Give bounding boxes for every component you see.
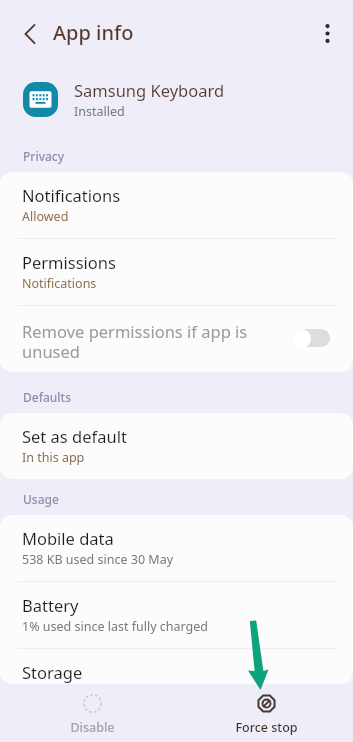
staticText: Privacy: [23, 148, 65, 164]
button[interactable]: Force stop: [218, 686, 314, 742]
button[interactable]: Back: [6, 10, 54, 58]
staticText: Usage: [23, 491, 59, 507]
staticText: Remove permissions if app is unused: [22, 320, 297, 363]
staticText: Storage: [22, 661, 83, 683]
button[interactable]: Battery: [0, 582, 353, 648]
button[interactable]: Mobile data: [0, 515, 353, 581]
staticText: Mobile data: [22, 527, 114, 549]
staticText: Set as default: [22, 425, 127, 447]
staticText: Defaults: [23, 389, 72, 405]
staticText: Installed: [74, 103, 125, 120]
staticText: Force stop: [235, 719, 298, 736]
button[interactable]: More options: [305, 11, 349, 55]
staticText: In this app: [22, 449, 85, 466]
staticText: Samsung Keyboard: [74, 79, 225, 101]
button[interactable]: Set as default: [0, 413, 353, 479]
button[interactable]: Notifications: [0, 172, 353, 238]
staticText: Permissions: [22, 251, 116, 273]
staticText: Notifications: [22, 275, 97, 292]
button[interactable]: Storage: [0, 649, 353, 684]
staticText: Battery: [22, 594, 79, 616]
button[interactable]: Disable: [44, 686, 140, 742]
button[interactable]: Permissions: [0, 239, 353, 305]
staticText: App info: [53, 19, 134, 46]
staticText: 538 KB used since 30 May: [22, 551, 174, 568]
staticText: Disable: [70, 719, 115, 736]
staticText: 1% used since last fully charged: [22, 618, 209, 635]
button[interactable]: Remove permissions if app is unused: [0, 306, 353, 372]
staticText: Notifications: [22, 184, 121, 206]
staticText: Allowed: [22, 208, 69, 225]
